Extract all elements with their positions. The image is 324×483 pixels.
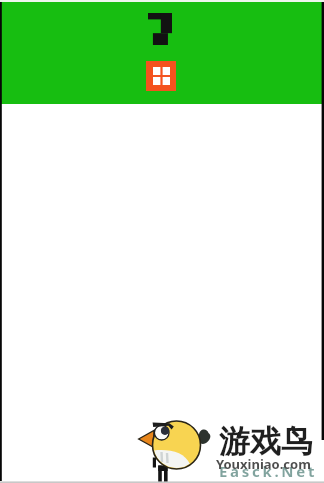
staticText: 游戏鸟 xyxy=(219,422,312,461)
staticText: Youxiniao.com xyxy=(216,455,311,473)
button[interactable]: App icon xyxy=(146,61,176,91)
staticText: Easck.Net xyxy=(219,461,318,481)
